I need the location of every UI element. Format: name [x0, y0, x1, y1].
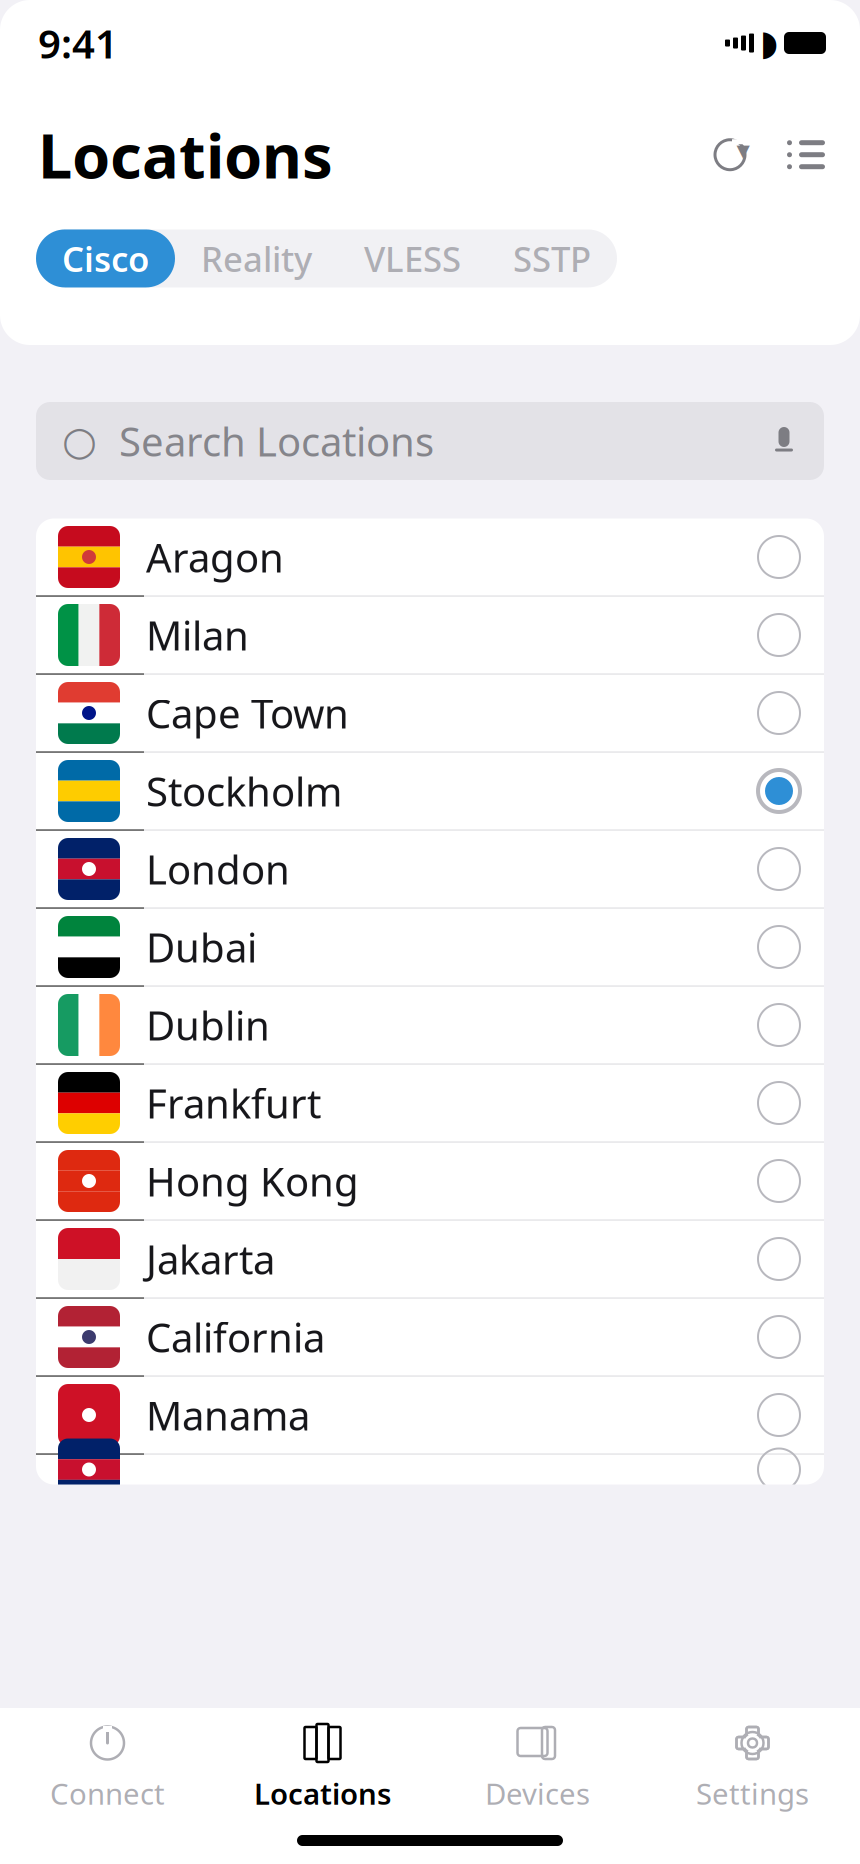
staticText: London [146, 842, 290, 895]
button[interactable]: List options [786, 135, 826, 175]
button[interactable]: Connect [0, 1708, 215, 1813]
button[interactable]: Dubai [36, 908, 824, 986]
staticText: 9:41 [38, 16, 118, 69]
staticText: Milan [146, 608, 249, 661]
button[interactable]: SSTP [487, 229, 617, 287]
button[interactable]: Reality [175, 229, 338, 287]
button[interactable]: Locations [215, 1708, 430, 1813]
staticText: ▼ [736, 141, 749, 161]
staticText: Stockholm [146, 764, 342, 817]
staticText: SSTP [513, 235, 591, 281]
button[interactable]: Settings [645, 1708, 860, 1813]
staticText: Dubai [146, 920, 257, 973]
staticText: Settings [696, 1774, 809, 1813]
button[interactable]: Aragon [36, 518, 824, 596]
staticText: ○ [62, 418, 97, 464]
button[interactable]: Refresh [710, 135, 750, 175]
staticText: California [146, 1310, 325, 1363]
button[interactable]: Stockholm [36, 752, 824, 830]
button[interactable]: Frankfurt [36, 1064, 824, 1142]
staticText: Devices [485, 1774, 590, 1813]
staticText: Cape Town [146, 686, 349, 739]
button[interactable]: Devices [430, 1708, 645, 1813]
button[interactable]: Hong Kong [36, 1142, 824, 1220]
staticText: Connect [50, 1774, 165, 1813]
staticText: Hong Kong [146, 1154, 359, 1207]
staticText: Locations [38, 114, 333, 195]
staticText: VLESS [364, 235, 461, 281]
staticText: Manama [146, 1388, 310, 1441]
staticText: Aragon [146, 530, 284, 583]
button[interactable]: Milan [36, 596, 824, 674]
staticText: Frankfurt [146, 1076, 321, 1129]
button[interactable]: Dublin [36, 986, 824, 1064]
button[interactable]: Cape Town [36, 674, 824, 752]
staticText: Dublin [146, 998, 270, 1051]
staticText: Jakarta [146, 1232, 275, 1285]
button[interactable]: Cisco [36, 229, 175, 287]
button[interactable]: California [36, 1298, 824, 1376]
staticText: Cisco [62, 235, 149, 281]
button[interactable]: VLESS [338, 229, 487, 287]
button[interactable]: London [36, 830, 824, 908]
staticText: Locations [254, 1774, 391, 1813]
button[interactable]: Jakarta [36, 1220, 824, 1298]
button[interactable]: Manama [36, 1376, 824, 1454]
staticText: Search Locations [119, 414, 434, 467]
staticText: ◗ [760, 23, 778, 63]
staticText: Reality [201, 235, 312, 281]
